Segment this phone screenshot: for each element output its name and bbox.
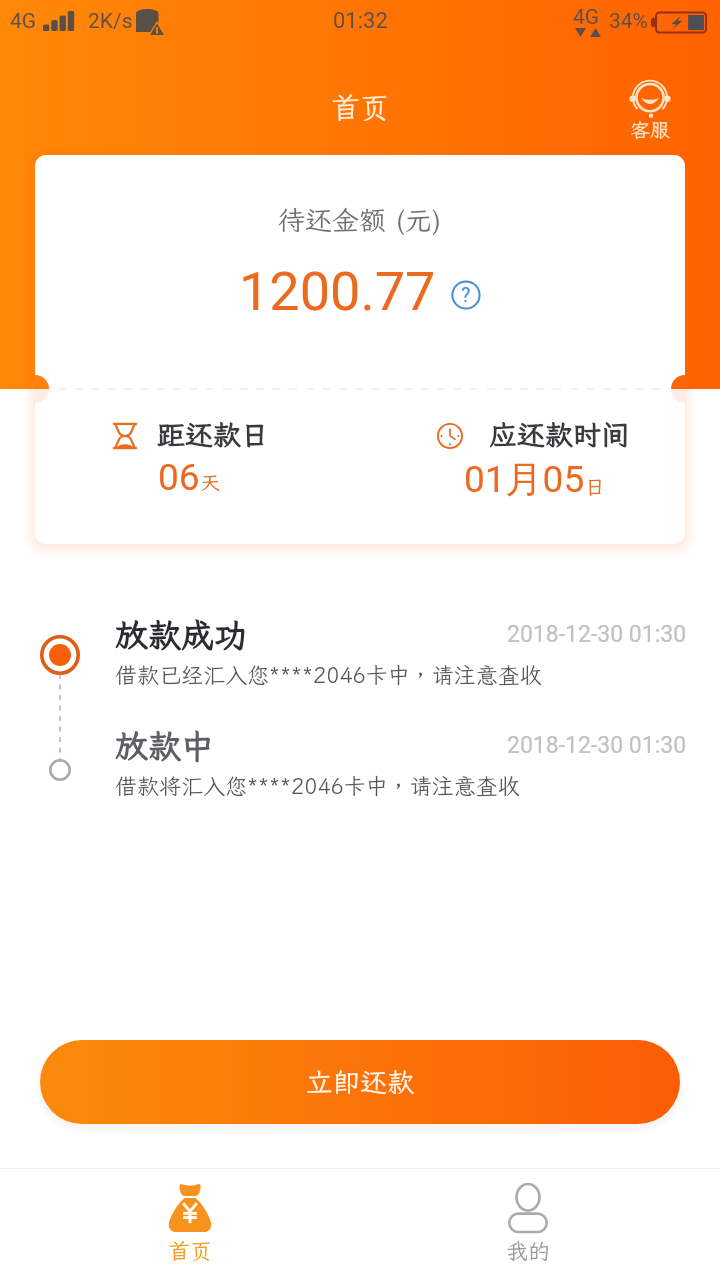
staticText: 客服 xyxy=(630,116,670,142)
staticText: 日 xyxy=(585,473,605,499)
staticText: ? xyxy=(461,283,471,306)
staticText: 待还金额 (元) xyxy=(278,202,442,238)
staticText: 01月05 xyxy=(464,456,585,503)
button[interactable]: 金额说明 xyxy=(451,280,481,310)
staticText: 放款中 xyxy=(115,724,214,767)
button[interactable]: 立即还款 xyxy=(40,1040,680,1124)
staticText: 首页 xyxy=(168,1236,213,1265)
staticText: 06 xyxy=(158,456,200,499)
staticText: 放款成功 xyxy=(115,613,247,656)
staticText: 首页 xyxy=(331,88,390,126)
staticText: 2K/s xyxy=(88,9,133,34)
staticText: 2018-12-30 01:30 xyxy=(507,621,687,648)
staticText: 34% xyxy=(609,9,648,34)
button[interactable]: 客服 xyxy=(614,74,686,140)
staticText: 4G xyxy=(573,5,600,30)
staticText: 借款已经汇入您****2046卡中，请注意查收 xyxy=(115,660,542,689)
staticText: 立即还款 xyxy=(306,1064,414,1100)
staticText: 4G xyxy=(10,9,37,34)
staticText: 我的 xyxy=(506,1236,551,1265)
staticText: 应还款时间 xyxy=(489,416,630,453)
button[interactable]: 首页 xyxy=(150,1176,230,1272)
staticText: 天 xyxy=(200,469,220,495)
staticText: 借款将汇入您****2046卡中，请注意查收 xyxy=(115,771,520,800)
staticText: 1200.77 xyxy=(239,260,436,323)
staticText: 距还款日 xyxy=(157,416,270,453)
staticText: 01:32 xyxy=(333,8,388,34)
staticText: 2018-12-30 01:30 xyxy=(507,732,687,759)
button[interactable]: 我的 xyxy=(488,1176,568,1272)
